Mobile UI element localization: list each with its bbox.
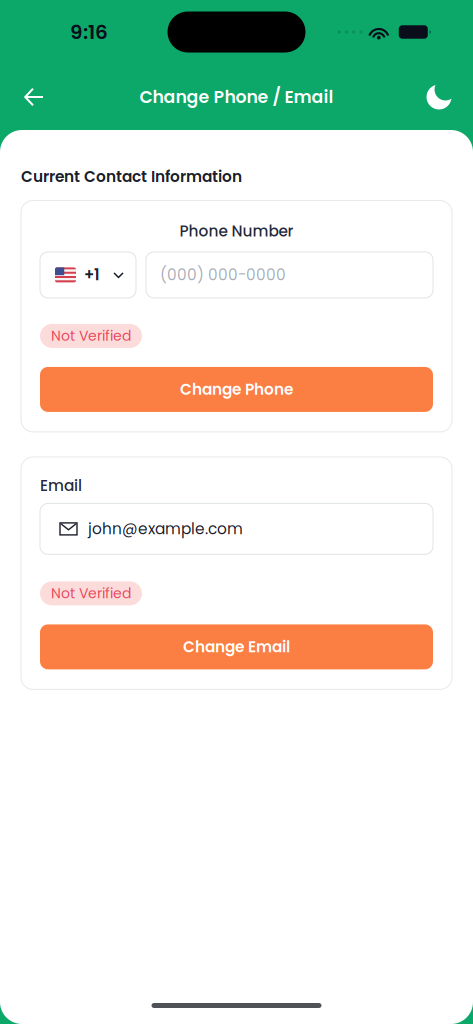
staticText: Change Phone	[180, 379, 293, 400]
staticText: 9:16	[70, 18, 108, 46]
staticText: (000) 000-0000	[160, 264, 286, 286]
button[interactable]: Change Phone	[40, 367, 433, 412]
staticText: Current Contact Information	[21, 166, 242, 187]
staticText: Not Verified	[51, 326, 131, 346]
staticText: Change Phone / Email	[139, 85, 333, 109]
staticText: Change Email	[183, 636, 290, 658]
staticText: Not Verified	[51, 584, 131, 603]
button[interactable]: Change Email	[40, 624, 433, 669]
staticText: +1	[84, 264, 100, 286]
button[interactable]: Back	[12, 75, 56, 119]
staticText: john@example.com	[88, 518, 243, 540]
button[interactable]: Toggle dark mode	[417, 75, 461, 119]
button[interactable]: Select country code	[40, 252, 136, 298]
staticText: Phone Number	[179, 220, 293, 242]
staticText: Email	[40, 475, 82, 496]
